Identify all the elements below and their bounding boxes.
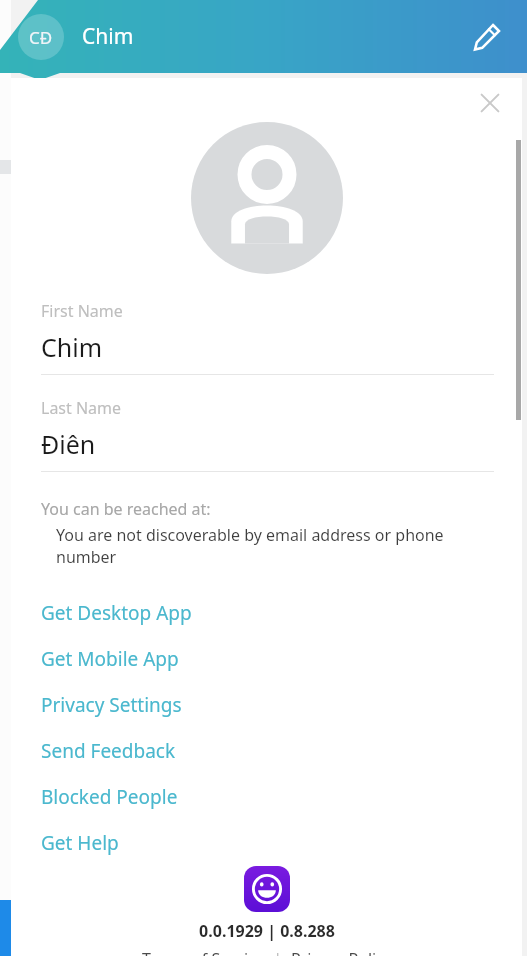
button[interactable]: Send Feedback <box>11 728 522 774</box>
staticText: Get Desktop App <box>41 600 192 626</box>
staticText: Get Help <box>41 830 119 856</box>
staticText: Chim <box>82 22 134 51</box>
staticText: Privacy Policy <box>291 948 392 956</box>
staticText: Điên <box>41 427 96 461</box>
staticText: CĐ <box>29 26 53 49</box>
staticText: Last Name <box>41 397 122 419</box>
button[interactable]: Privacy Settings <box>11 682 522 728</box>
staticText: Get Mobile App <box>41 646 179 672</box>
button[interactable]: Close <box>470 84 510 122</box>
staticText: Blocked People <box>41 784 178 810</box>
other: App logo <box>244 866 290 912</box>
button[interactable]: Privacy Policy <box>291 948 392 956</box>
staticText: You can be reached at: <box>41 498 211 520</box>
staticText: | <box>265 948 291 956</box>
staticText: Terms of Service <box>142 948 265 956</box>
staticText: 0.0.1929 | 0.8.288 <box>199 920 335 942</box>
button[interactable]: Edit profile <box>461 11 513 63</box>
staticText: First Name <box>41 300 123 322</box>
button[interactable]: Get Help <box>11 820 522 866</box>
button[interactable]: Get Mobile App <box>11 636 522 682</box>
button[interactable]: Blocked People <box>11 774 522 820</box>
staticText: Send Feedback <box>41 738 176 764</box>
button[interactable]: CĐ <box>18 14 64 60</box>
staticText: Privacy Settings <box>41 692 182 718</box>
button[interactable]: Last Name <box>11 397 522 472</box>
button[interactable]: Get Desktop App <box>11 590 522 636</box>
button[interactable]: Profile picture <box>191 122 343 274</box>
staticText: Chim <box>41 330 103 364</box>
button[interactable]: First Name <box>11 300 522 375</box>
staticText: You are not discoverable by email addres… <box>56 524 498 568</box>
button[interactable]: Terms of Service <box>142 948 265 956</box>
